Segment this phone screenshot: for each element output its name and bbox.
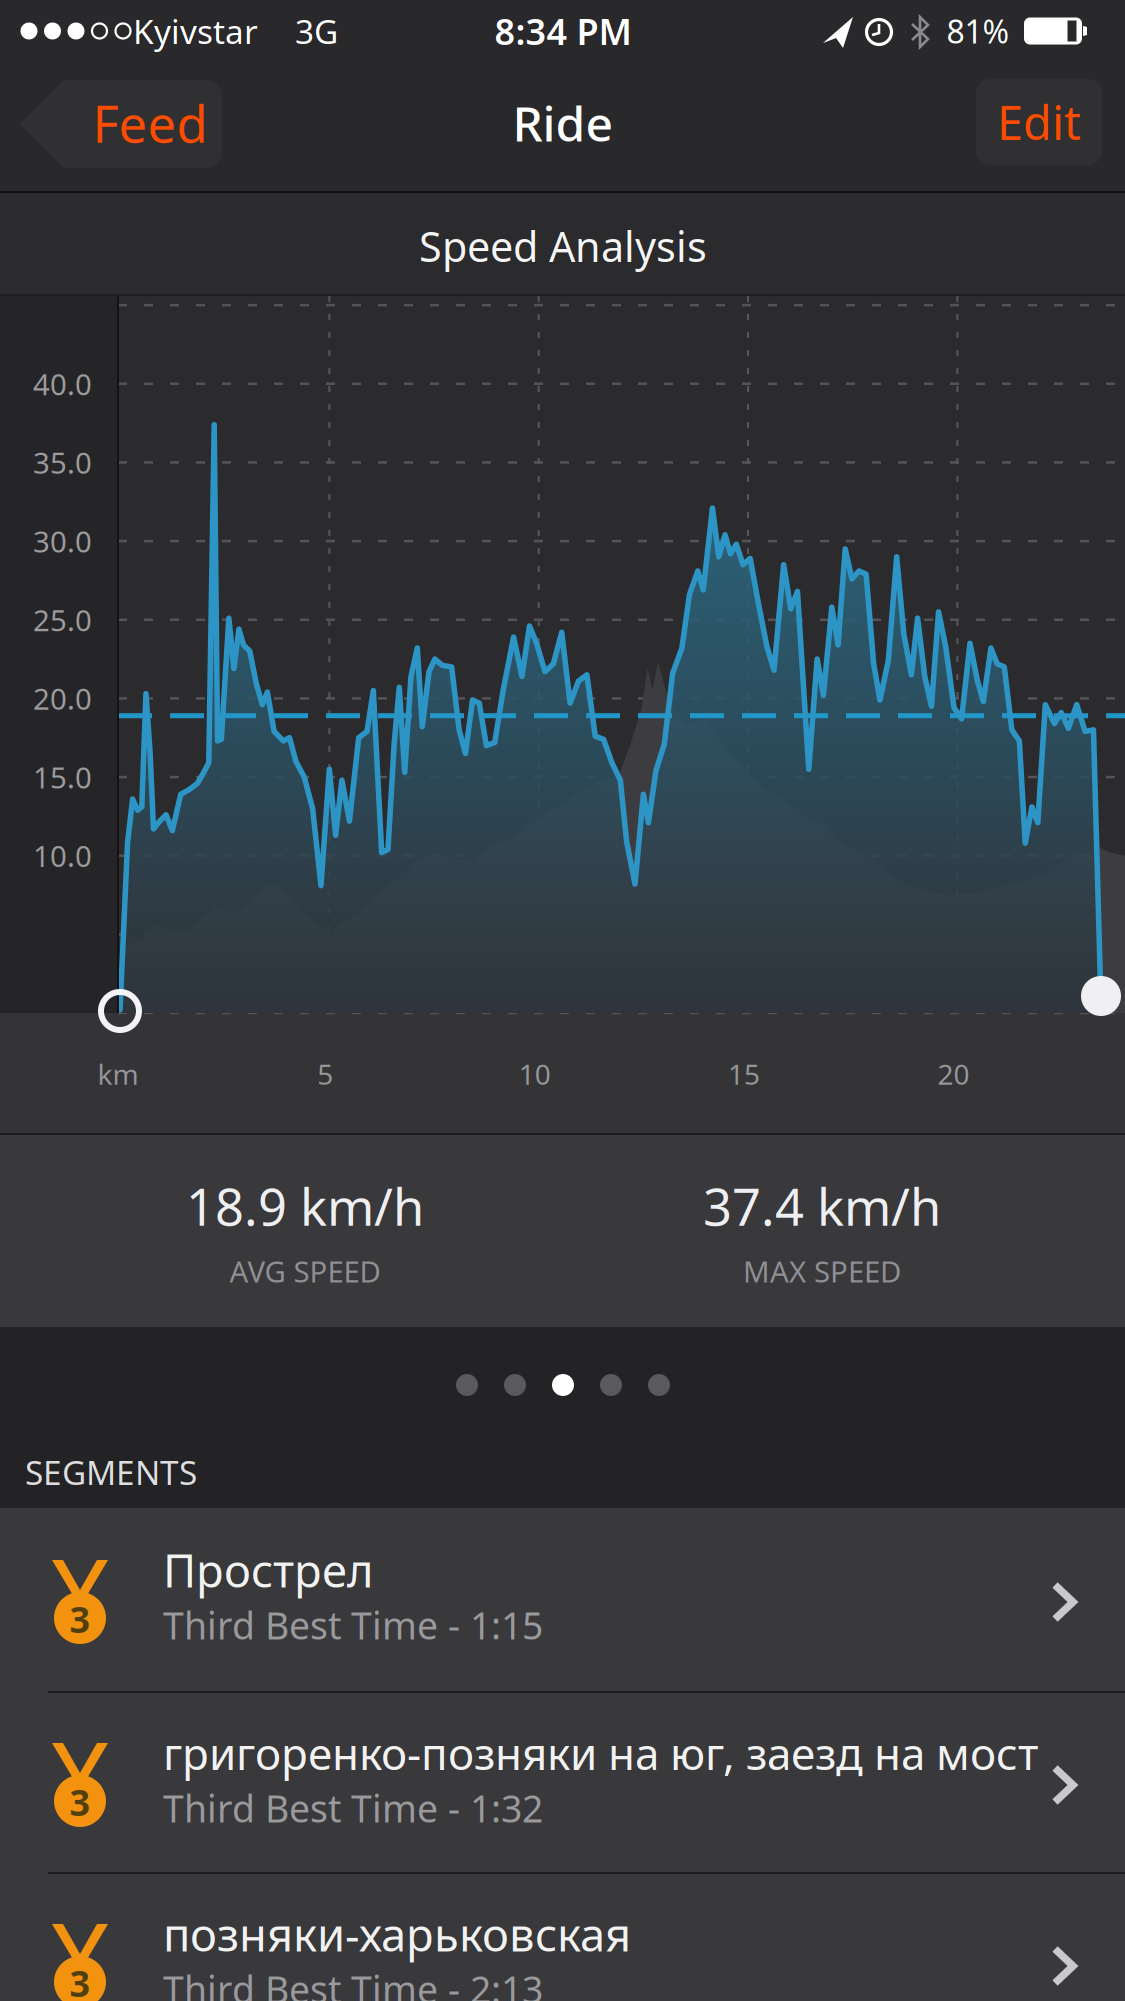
staticText: 18.9 km/h xyxy=(186,1172,424,1240)
staticText: km xyxy=(97,1055,138,1093)
button[interactable]: Back to Feed xyxy=(0,0,240,191)
staticText: 5 xyxy=(317,1055,333,1093)
staticText: 3G xyxy=(295,9,338,53)
staticText: 3 xyxy=(69,1778,90,1826)
staticText: Feed xyxy=(92,89,207,157)
staticText: 10.0 xyxy=(33,836,92,875)
staticText: 37.4 km/h xyxy=(703,1172,941,1240)
staticText: Edit xyxy=(997,91,1081,153)
staticText: SEGMENTS xyxy=(25,1450,197,1494)
staticText: Ride xyxy=(512,91,613,155)
staticText: 30.0 xyxy=(33,522,92,561)
staticText: Speed Analysis xyxy=(419,219,707,273)
staticText: 3 xyxy=(69,1595,90,1643)
staticText: MAX SPEED xyxy=(743,1251,901,1290)
button[interactable]: Edit xyxy=(976,79,1102,165)
staticText: Kyivstar xyxy=(133,9,258,53)
staticText: 3 xyxy=(69,1959,90,2001)
button[interactable]: 3 xyxy=(0,1872,1125,2001)
staticText: 15 xyxy=(728,1055,760,1093)
staticText: 40.0 xyxy=(33,364,92,403)
staticText: 15.0 xyxy=(33,758,92,797)
staticText: 10 xyxy=(519,1055,551,1093)
staticText: 81% xyxy=(946,10,1009,52)
staticText: 20.0 xyxy=(33,679,92,718)
button[interactable]: 3 xyxy=(0,1691,1125,1874)
staticText: Third Best Time - 2:13 xyxy=(163,1964,543,2001)
staticText: Прострел xyxy=(163,1540,374,1600)
staticText: Third Best Time - 1:15 xyxy=(163,1600,543,1650)
staticText: AVG SPEED xyxy=(229,1251,380,1290)
staticText: 8:34 PM xyxy=(494,7,631,55)
button[interactable]: 3 xyxy=(0,1508,1125,1691)
staticText: 35.0 xyxy=(33,443,92,482)
staticText: 20 xyxy=(937,1055,969,1093)
staticText: 25.0 xyxy=(33,600,92,639)
staticText: Third Best Time - 1:32 xyxy=(163,1783,543,1833)
staticText: позняки-харьковская xyxy=(163,1904,631,1964)
staticText: григоренко-позняки на юг, заезд на мост xyxy=(163,1724,1038,1782)
